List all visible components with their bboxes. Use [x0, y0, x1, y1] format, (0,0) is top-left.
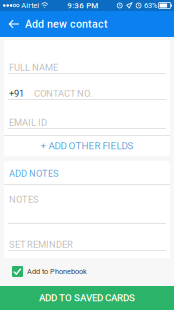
button[interactable]: Back	[3, 11, 25, 37]
staticText: ADD TO SAVED CARDS	[39, 292, 135, 304]
staticText: EMAIL ID	[9, 117, 47, 128]
staticText: FULL NAME	[9, 62, 58, 73]
staticText: +91	[9, 88, 24, 99]
button[interactable]: ADD NOTES	[4, 161, 170, 184]
staticText: CONTACT NO.	[34, 88, 92, 99]
button[interactable]: ADD TO SAVED CARDS	[0, 286, 174, 310]
staticText: NOTES	[9, 194, 39, 205]
button[interactable]: Add to Phonebook	[0, 258, 174, 285]
button[interactable]: + ADD OTHER FIELDS	[4, 136, 170, 156]
staticText: + ADD OTHER FIELDS	[40, 140, 133, 152]
staticText: Add new contact	[25, 18, 108, 30]
staticText: 63%	[144, 1, 157, 10]
staticText: SET REMINDER	[9, 239, 73, 250]
staticText: 9:36 PM	[67, 1, 98, 10]
staticText: Add to Phonebook	[27, 267, 87, 276]
staticText: Airtel	[21, 1, 39, 10]
staticText: ADD NOTES	[9, 168, 59, 179]
